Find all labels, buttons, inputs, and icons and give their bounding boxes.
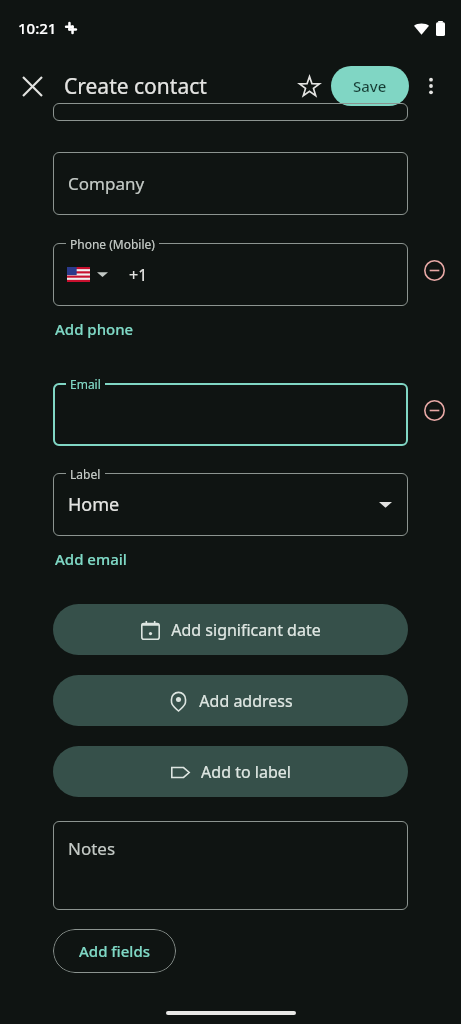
staticText: Phone (Mobile) bbox=[70, 236, 155, 252]
button[interactable]: Save bbox=[331, 66, 409, 106]
staticText: Add to label bbox=[201, 761, 291, 783]
staticText: Add address bbox=[199, 690, 293, 712]
staticText: Notes bbox=[68, 837, 116, 860]
staticText: Add significant date bbox=[171, 619, 321, 641]
staticText: Add fields bbox=[79, 941, 150, 961]
staticText: Home bbox=[68, 492, 379, 517]
button[interactable] bbox=[53, 383, 408, 446]
button[interactable]: Add to label bbox=[53, 746, 408, 797]
staticText: 10:21 bbox=[18, 18, 57, 38]
staticText: +1 bbox=[129, 264, 148, 286]
button[interactable]: Add address bbox=[53, 675, 408, 726]
staticText: Company bbox=[68, 172, 145, 195]
button[interactable]: Add email bbox=[53, 546, 129, 572]
button[interactable]: +1 bbox=[53, 243, 408, 306]
button[interactable] bbox=[53, 103, 408, 121]
staticText: Save bbox=[353, 76, 387, 96]
button[interactable]: Remove email bbox=[408, 379, 461, 442]
staticText: Add phone bbox=[55, 319, 134, 339]
button[interactable]: Home bbox=[53, 473, 408, 536]
button[interactable]: More options bbox=[409, 64, 453, 108]
button[interactable]: Add phone bbox=[53, 316, 136, 342]
staticText: Add email bbox=[55, 549, 127, 569]
button[interactable]: Remove phone bbox=[408, 239, 461, 302]
staticText: Label bbox=[70, 466, 101, 482]
staticText: Create contact bbox=[64, 72, 207, 101]
button[interactable]: Add significant date bbox=[53, 604, 408, 655]
button[interactable]: Close bbox=[10, 64, 54, 108]
staticText: Email bbox=[70, 376, 101, 392]
button[interactable]: Company bbox=[53, 152, 408, 215]
button[interactable]: Favorite bbox=[287, 64, 331, 108]
button[interactable]: Add fields bbox=[53, 929, 176, 973]
button[interactable]: Notes bbox=[53, 821, 408, 910]
